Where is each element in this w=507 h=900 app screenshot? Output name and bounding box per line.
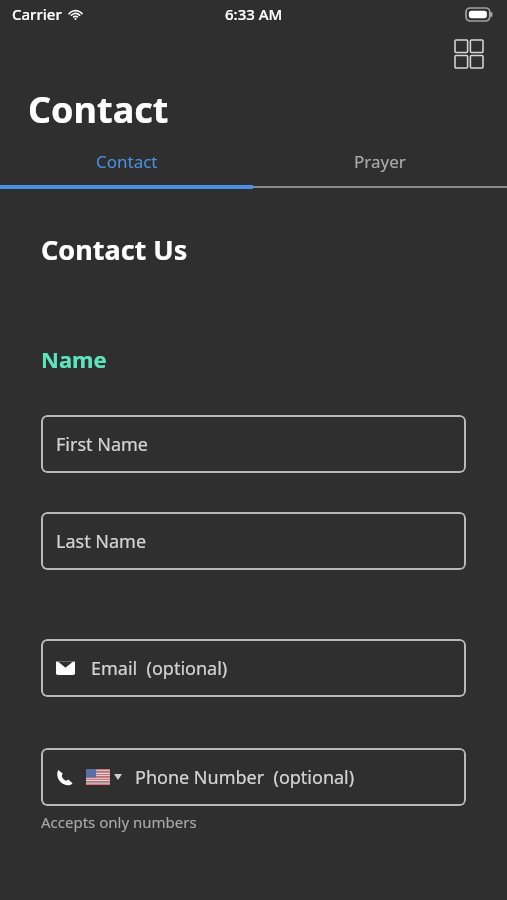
staticText: Contact <box>96 150 158 173</box>
staticText: Prayer <box>354 150 406 173</box>
button[interactable]: Contact <box>0 138 253 185</box>
staticText: Accepts only numbers <box>41 812 197 832</box>
staticText: Contact Us <box>41 231 188 268</box>
staticText: Contact <box>28 85 169 134</box>
staticText: Last Name <box>56 529 147 554</box>
staticText: Carrier <box>12 4 62 24</box>
button[interactable]: Phone Number (optional) <box>41 748 466 806</box>
button[interactable]: First Name <box>41 415 466 473</box>
button[interactable]: Menu grid <box>449 34 489 74</box>
button[interactable]: Prayer <box>253 138 507 185</box>
staticText: 6:33 AM <box>225 4 283 24</box>
staticText: Email (optional) <box>91 656 228 681</box>
staticText: First Name <box>56 432 148 457</box>
staticText: Phone Number (optional) <box>135 765 355 790</box>
staticText: Name <box>41 344 107 374</box>
button[interactable]: Last Name <box>41 512 466 570</box>
button[interactable]: Email (optional) <box>41 639 466 697</box>
